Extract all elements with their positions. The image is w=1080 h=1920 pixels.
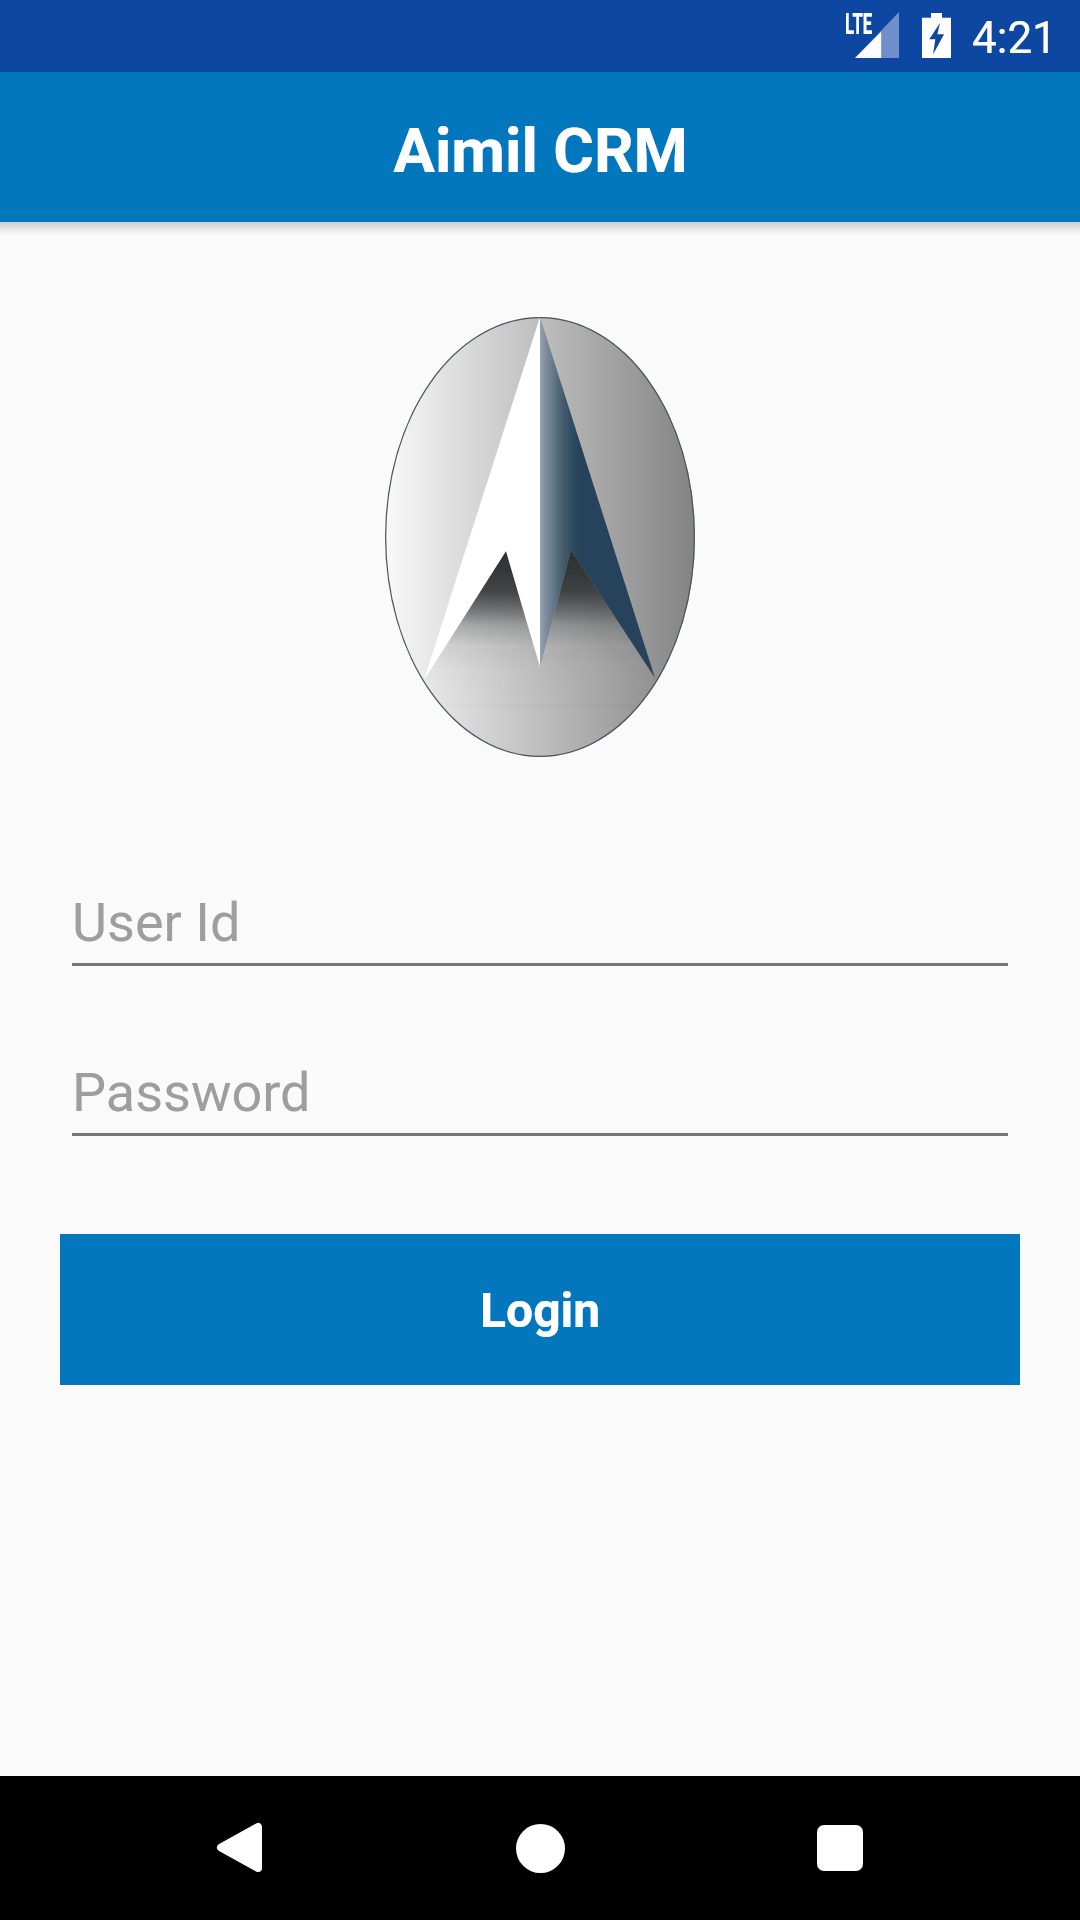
staticText: Password [72,1061,311,1124]
button[interactable]: Login [60,1234,1020,1385]
staticText: LTE [845,7,873,41]
button[interactable]: Recent apps [750,1776,930,1920]
staticText: User Id [72,891,241,954]
button[interactable]: Password [72,1061,1008,1136]
staticText: Aimil CRM [393,114,688,187]
button[interactable]: Back [150,1776,330,1920]
staticText: 4:21 [972,12,1057,64]
button[interactable]: User Id [72,891,1008,966]
staticText: Login [480,1282,601,1338]
button[interactable]: Home [450,1776,630,1920]
